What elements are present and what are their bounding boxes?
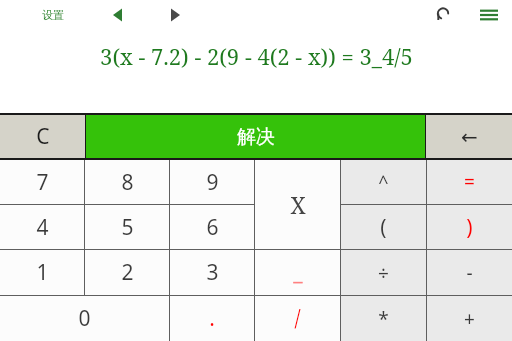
- button[interactable]: =: [427, 160, 512, 204]
- button[interactable]: /: [255, 296, 340, 341]
- button[interactable]: 9: [170, 160, 254, 204]
- button[interactable]: ÷: [341, 250, 426, 295]
- staticText: ←: [461, 125, 478, 148]
- staticText: 0: [78, 304, 91, 333]
- staticText: 7: [36, 168, 49, 197]
- staticText: 4: [36, 213, 49, 242]
- staticText: /: [294, 304, 301, 333]
- button[interactable]: -: [427, 250, 512, 295]
- button[interactable]: 8: [85, 160, 169, 204]
- staticText: X: [290, 189, 306, 220]
- button[interactable]: 1: [0, 250, 84, 295]
- staticText: 3: [206, 258, 219, 287]
- staticText: 2: [121, 258, 134, 287]
- staticText: =: [464, 169, 475, 195]
- button[interactable]: 5: [85, 205, 169, 249]
- staticText: 6: [206, 213, 219, 242]
- button[interactable]: +: [427, 296, 512, 341]
- button[interactable]: C: [0, 115, 85, 158]
- staticText: 3(x - 7.2) - 2(9 - 4(2 - x)) = 3_4/5: [100, 41, 413, 71]
- staticText: 解决: [237, 125, 275, 149]
- button[interactable]: 设置: [28, 4, 78, 26]
- staticText: ^: [378, 170, 389, 195]
- staticText: ): [466, 213, 473, 242]
- staticText: *: [378, 306, 389, 332]
- button[interactable]: ): [427, 205, 512, 249]
- staticText: 1: [36, 258, 49, 287]
- button[interactable]: 4: [0, 205, 84, 249]
- button[interactable]: .: [170, 296, 254, 341]
- staticText: (: [380, 213, 387, 242]
- staticText: 5: [121, 213, 134, 242]
- button[interactable]: 7: [0, 160, 84, 204]
- button[interactable]: Previous: [102, 2, 134, 28]
- button[interactable]: 3: [170, 250, 254, 295]
- button[interactable]: _: [255, 250, 340, 295]
- staticText: 9: [206, 168, 219, 197]
- button[interactable]: *: [341, 296, 426, 341]
- button[interactable]: (: [341, 205, 426, 249]
- button[interactable]: ^: [341, 160, 426, 204]
- button[interactable]: 6: [170, 205, 254, 249]
- staticText: 设置: [42, 8, 64, 22]
- staticText: .: [209, 304, 215, 333]
- staticText: ÷: [378, 260, 389, 286]
- button[interactable]: X: [255, 160, 340, 249]
- staticText: -: [466, 260, 473, 286]
- staticText: 8: [121, 168, 134, 197]
- staticText: C: [36, 122, 50, 151]
- staticText: _: [293, 258, 303, 287]
- button[interactable]: Backspace: [426, 115, 512, 158]
- button[interactable]: 2: [85, 250, 169, 295]
- button[interactable]: 0: [0, 296, 169, 341]
- staticText: +: [464, 306, 475, 332]
- button[interactable]: Undo: [428, 2, 458, 28]
- button[interactable]: 解决: [86, 115, 425, 158]
- button[interactable]: Menu: [473, 2, 505, 28]
- button[interactable]: Next: [159, 2, 191, 28]
